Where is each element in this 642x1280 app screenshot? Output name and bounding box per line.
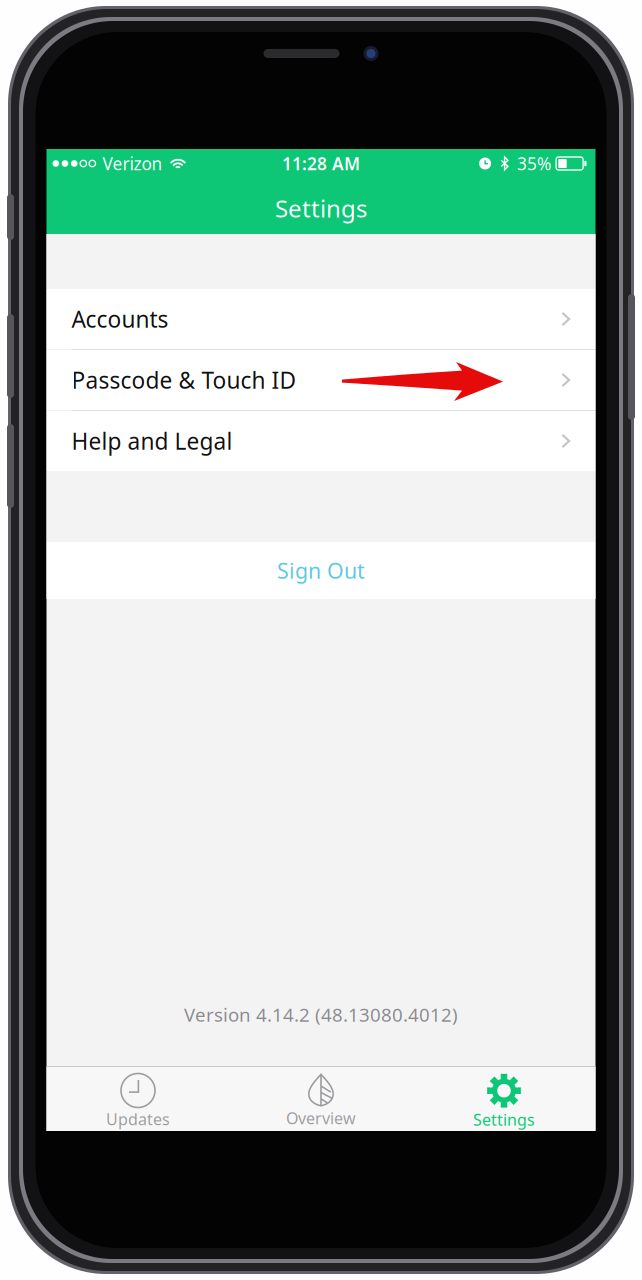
staticText: Settings (473, 1109, 535, 1130)
staticText: Updates (106, 1108, 170, 1130)
staticText: Settings (275, 192, 367, 224)
button[interactable]: Accounts (46, 289, 595, 349)
button[interactable]: Passcode & Touch ID (46, 350, 595, 410)
staticText: Accounts (71, 304, 168, 334)
staticText: 11:28 AM (282, 152, 360, 175)
button[interactable]: Updates (46, 1066, 229, 1131)
staticText: Passcode & Touch ID (71, 365, 296, 395)
button[interactable]: Overview (229, 1066, 412, 1131)
button[interactable]: Settings (412, 1066, 595, 1131)
staticText: Help and Legal (71, 426, 232, 456)
staticText: Verizon (102, 152, 162, 175)
staticText: Version 4.14.2 (48.13080.4012) (184, 1002, 458, 1027)
staticText: 35% (517, 152, 551, 175)
staticText: Sign Out (277, 556, 365, 585)
button[interactable]: Help and Legal (46, 411, 595, 471)
button[interactable]: Sign Out (46, 542, 595, 599)
staticText: Overview (286, 1107, 356, 1129)
